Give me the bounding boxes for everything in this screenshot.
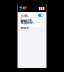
button[interactable]: Sounds	[19, 18, 45, 22]
staticText: ▮▮▮	[38, 6, 44, 10]
staticText: Sounds	[20, 17, 32, 23]
button[interactable]: Appearance	[19, 23, 45, 27]
staticText: Notifications	[20, 7, 29, 23]
staticText: Appearance	[20, 19, 34, 30]
staticText: 9:41	[19, 5, 26, 11]
button[interactable]: Notifications	[19, 13, 45, 17]
